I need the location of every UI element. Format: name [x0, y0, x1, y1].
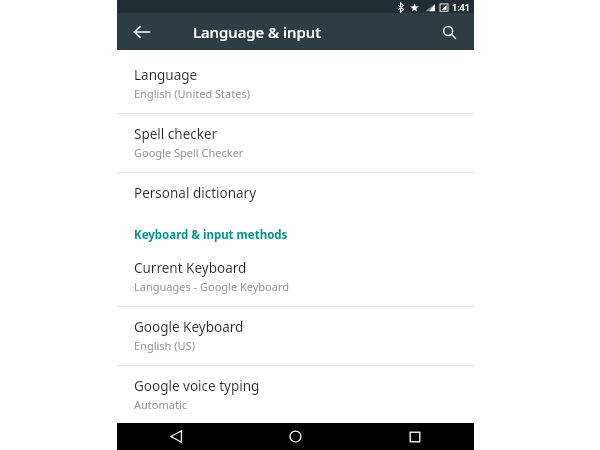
button[interactable]: Google voice typing	[117, 366, 474, 423]
staticText: Spell checker	[134, 125, 218, 143]
button[interactable]: Back	[117, 423, 236, 450]
button[interactable]: Back	[125, 15, 159, 49]
staticText: Current Keyboard	[134, 259, 247, 277]
staticText: Keyboard & input methods	[134, 227, 288, 243]
staticText: Language	[134, 66, 198, 84]
button[interactable]: Google Keyboard	[117, 307, 474, 365]
button[interactable]: Current Keyboard	[117, 245, 474, 306]
staticText: Language & input	[193, 22, 321, 42]
button[interactable]: Search	[432, 15, 466, 49]
staticText: Automatic	[134, 397, 187, 411]
staticText: Languages - Google Keyboard	[134, 279, 290, 294]
staticText: Google Spell Checker	[134, 145, 244, 160]
button[interactable]: Recent apps	[355, 423, 474, 450]
button[interactable]: Spell checker	[117, 114, 474, 172]
button[interactable]: Home	[236, 423, 355, 450]
button[interactable]: Language	[117, 55, 474, 113]
staticText: Personal dictionary	[134, 184, 257, 202]
staticText: 1:41	[452, 1, 470, 13]
staticText: English (United States)	[134, 86, 250, 101]
button[interactable]: Personal dictionary	[117, 173, 474, 214]
staticText: Google Keyboard	[134, 318, 244, 336]
staticText: English (US)	[134, 338, 195, 353]
staticText: Google voice typing	[134, 377, 260, 395]
